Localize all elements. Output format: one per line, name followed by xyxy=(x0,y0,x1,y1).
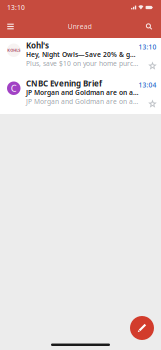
staticText: Hey, Night Owls—Save 20% & get grea… xyxy=(26,50,138,59)
staticText: Unread xyxy=(68,22,92,31)
button[interactable]: Compose xyxy=(130,316,154,340)
staticText: Plus, save $10 on your home purchase | V… xyxy=(26,59,138,68)
staticText: Kohl's xyxy=(26,40,49,51)
staticText: C xyxy=(11,82,17,94)
staticText: 13:10 xyxy=(138,43,156,51)
staticText: CNBC Evening Brief xyxy=(26,78,102,89)
staticText: 13:10 xyxy=(7,3,25,12)
staticText: JP Morgan and Goldman are on a collis… xyxy=(26,88,138,97)
button[interactable]: Open navigation menu xyxy=(2,16,18,36)
staticText: 13:04 xyxy=(138,81,156,89)
staticText: KOHLS xyxy=(7,48,20,53)
button[interactable]: KOHLS xyxy=(0,38,161,76)
button[interactable]: Star conversation xyxy=(148,100,156,108)
button[interactable]: Search mail xyxy=(141,16,157,36)
button[interactable]: C xyxy=(0,76,161,114)
button[interactable]: Star conversation xyxy=(148,62,156,70)
staticText: JP Morgan and Goldman are on a collision… xyxy=(26,97,138,106)
